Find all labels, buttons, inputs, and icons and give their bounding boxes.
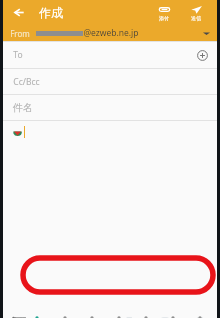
button[interactable] [3,121,217,142]
staticText: From [10,28,30,39]
button[interactable]: From [3,24,217,41]
staticText: 件名 [13,101,33,114]
button[interactable]: Send [183,0,209,24]
staticText: 作成 [39,5,63,20]
button[interactable]: To [3,42,217,68]
button[interactable]: Back [3,0,33,24]
staticText: Cc/Bcc [13,76,40,88]
button[interactable]: Add contact [195,48,209,62]
staticText: To [13,49,23,61]
staticText: 送信 [191,15,201,21]
button[interactable]: Attach [151,0,177,24]
button[interactable]: Cc/Bcc [3,69,217,94]
staticText: 添付 [159,15,169,21]
button[interactable]: 件名 [3,95,217,120]
staticText: @ezweb.ne.jp [83,27,139,39]
